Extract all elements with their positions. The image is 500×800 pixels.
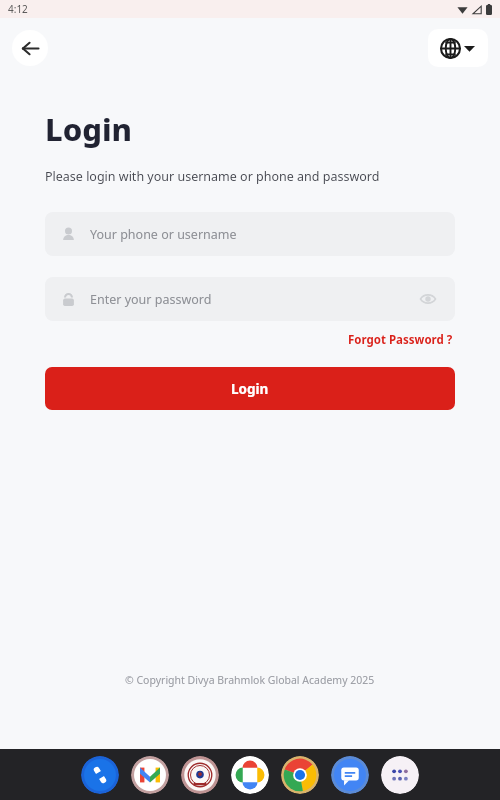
staticText: Login — [45, 108, 133, 150]
staticText: Please login with your username or phone… — [45, 168, 380, 185]
button[interactable]: Phone — [81, 756, 119, 794]
button[interactable]: Photos — [231, 756, 269, 794]
staticText: Login — [231, 380, 269, 398]
button[interactable]: Enter your password — [45, 277, 455, 321]
button[interactable]: Show password — [417, 288, 439, 310]
staticText: Enter your password — [90, 291, 212, 308]
staticText: 4:12 — [8, 2, 28, 16]
button[interactable]: Chrome — [281, 756, 319, 794]
staticText: © Copyright Divya Brahmlok Global Academ… — [125, 673, 375, 687]
button[interactable]: Select language — [428, 29, 488, 67]
button[interactable]: All apps — [381, 756, 419, 794]
button[interactable]: School — [181, 756, 219, 794]
button[interactable]: Your phone or username — [45, 212, 455, 256]
button[interactable]: Messages — [331, 756, 369, 794]
button[interactable]: Gmail — [131, 756, 169, 794]
staticText: Your phone or username — [90, 226, 237, 243]
button[interactable]: Login — [45, 367, 455, 410]
staticText: Forgot Password ? — [348, 332, 453, 348]
button[interactable]: Forgot Password ? — [346, 330, 455, 350]
button[interactable]: Back — [12, 30, 48, 66]
